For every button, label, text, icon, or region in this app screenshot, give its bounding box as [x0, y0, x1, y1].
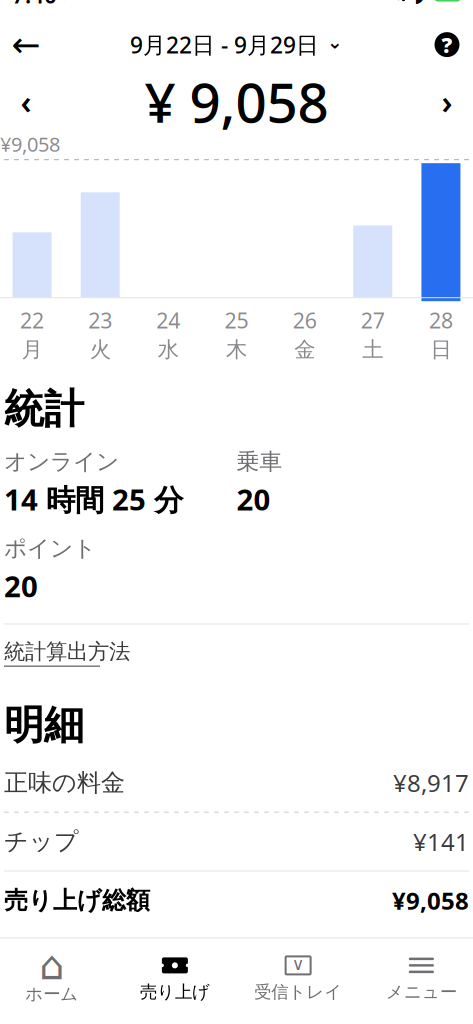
staticText: ¥ 9,058 [144, 65, 328, 138]
staticText: 受信トレイ [254, 981, 342, 1003]
staticText: ⌄ [327, 31, 343, 53]
button[interactable]: ∨ [236, 948, 360, 1009]
button[interactable]: メニュー [360, 948, 473, 1009]
staticText: 7:40 [12, 0, 57, 10]
staticText: 火 [90, 336, 111, 363]
staticText: 9月22日 - 9月29日 [130, 30, 319, 60]
staticText: 日 [430, 336, 451, 363]
staticText: 20 [236, 480, 270, 519]
staticText: 売り上げ総額 [4, 886, 150, 915]
staticText: ⌂ [39, 943, 64, 988]
staticText: ポイント [4, 535, 96, 562]
staticText: ホーム [25, 983, 78, 1005]
staticText: 14 時間 25 分 [4, 480, 183, 519]
button[interactable]: ⌂ [0, 946, 113, 1011]
staticText: 20 [4, 566, 38, 605]
button[interactable]: ヘルプ [427, 25, 467, 65]
staticText: ‹ [20, 80, 31, 123]
staticText: 統計算出方法 [4, 638, 130, 665]
staticText: 水 [158, 336, 179, 363]
staticText: 23 [88, 306, 112, 334]
staticText: 木 [226, 336, 247, 363]
button[interactable]: 前の週 [4, 80, 48, 124]
staticText: 28 [429, 306, 453, 334]
staticText: チップ [4, 827, 79, 856]
staticText: 統計 [4, 385, 84, 434]
staticText: 乗車 [236, 448, 282, 476]
staticText: ¥8,917 [393, 767, 469, 799]
staticText: ¥9,058 [0, 131, 60, 157]
staticText: 正味の料金 [4, 768, 125, 797]
staticText: ← [11, 25, 40, 64]
button[interactable]: 9月22日 - 9月29日 [124, 25, 349, 65]
staticText: 27 [361, 306, 385, 334]
staticText: ∨ [292, 954, 305, 974]
button[interactable]: 売り上げ [113, 948, 236, 1009]
staticText: ◗ [414, 0, 425, 6]
staticText: ¥9,058 [392, 884, 469, 916]
staticText: ¥141 [413, 826, 469, 857]
staticText: › [441, 80, 452, 123]
staticText: オンライン [4, 448, 119, 476]
staticText: 25 [224, 306, 248, 334]
staticText: ? [441, 30, 452, 59]
staticText: 24 [156, 306, 180, 334]
button[interactable]: 戻る [6, 25, 46, 65]
button[interactable]: 統計算出方法 [4, 624, 130, 681]
staticText: メニュー [386, 981, 457, 1003]
staticText: 月 [22, 336, 43, 363]
staticText: 22 [20, 306, 44, 334]
staticText: 金 [294, 336, 315, 363]
staticText: 売り上げ [140, 981, 210, 1003]
button[interactable]: 次の週 [425, 80, 469, 124]
staticText: 26 [293, 306, 317, 334]
staticText: 明細 [4, 701, 84, 750]
staticText: 土 [362, 336, 383, 363]
staticText: 100 [435, 0, 459, 3]
